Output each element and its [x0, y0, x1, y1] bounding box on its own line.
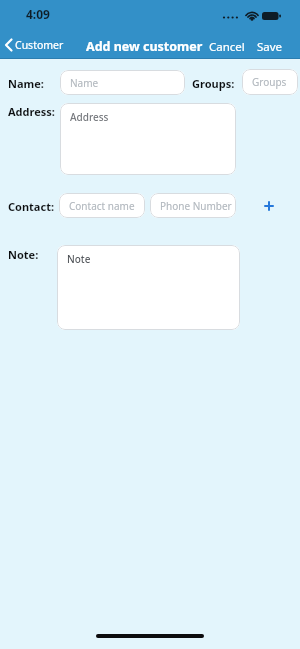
staticText: Note:	[8, 247, 39, 262]
staticText: Name	[70, 76, 99, 90]
staticText: Customer	[15, 38, 64, 52]
button[interactable]: Address	[60, 103, 236, 175]
button[interactable]	[261, 198, 277, 214]
button[interactable]: Contact name	[59, 193, 145, 218]
button[interactable]: Customer	[4, 35, 64, 55]
staticText: Groups:	[192, 76, 235, 91]
staticText: Phone Number	[160, 199, 232, 213]
button[interactable]: Cancel	[209, 39, 245, 55]
button[interactable]: Groups	[242, 69, 298, 95]
staticText: Address	[70, 110, 109, 124]
staticText: Note	[67, 252, 91, 266]
button[interactable]: Save	[257, 39, 283, 55]
staticText: Contact:	[8, 199, 54, 214]
staticText: 4:09	[26, 6, 50, 22]
button[interactable]: Note	[57, 245, 240, 330]
staticText: Name:	[8, 76, 44, 91]
staticText: Groups	[252, 75, 287, 89]
button[interactable]: Name	[60, 70, 185, 95]
button[interactable]: Phone Number	[150, 193, 236, 218]
staticText: Address:	[8, 104, 55, 119]
staticText: Add new customer	[86, 38, 203, 55]
staticText: Contact name	[69, 199, 135, 213]
